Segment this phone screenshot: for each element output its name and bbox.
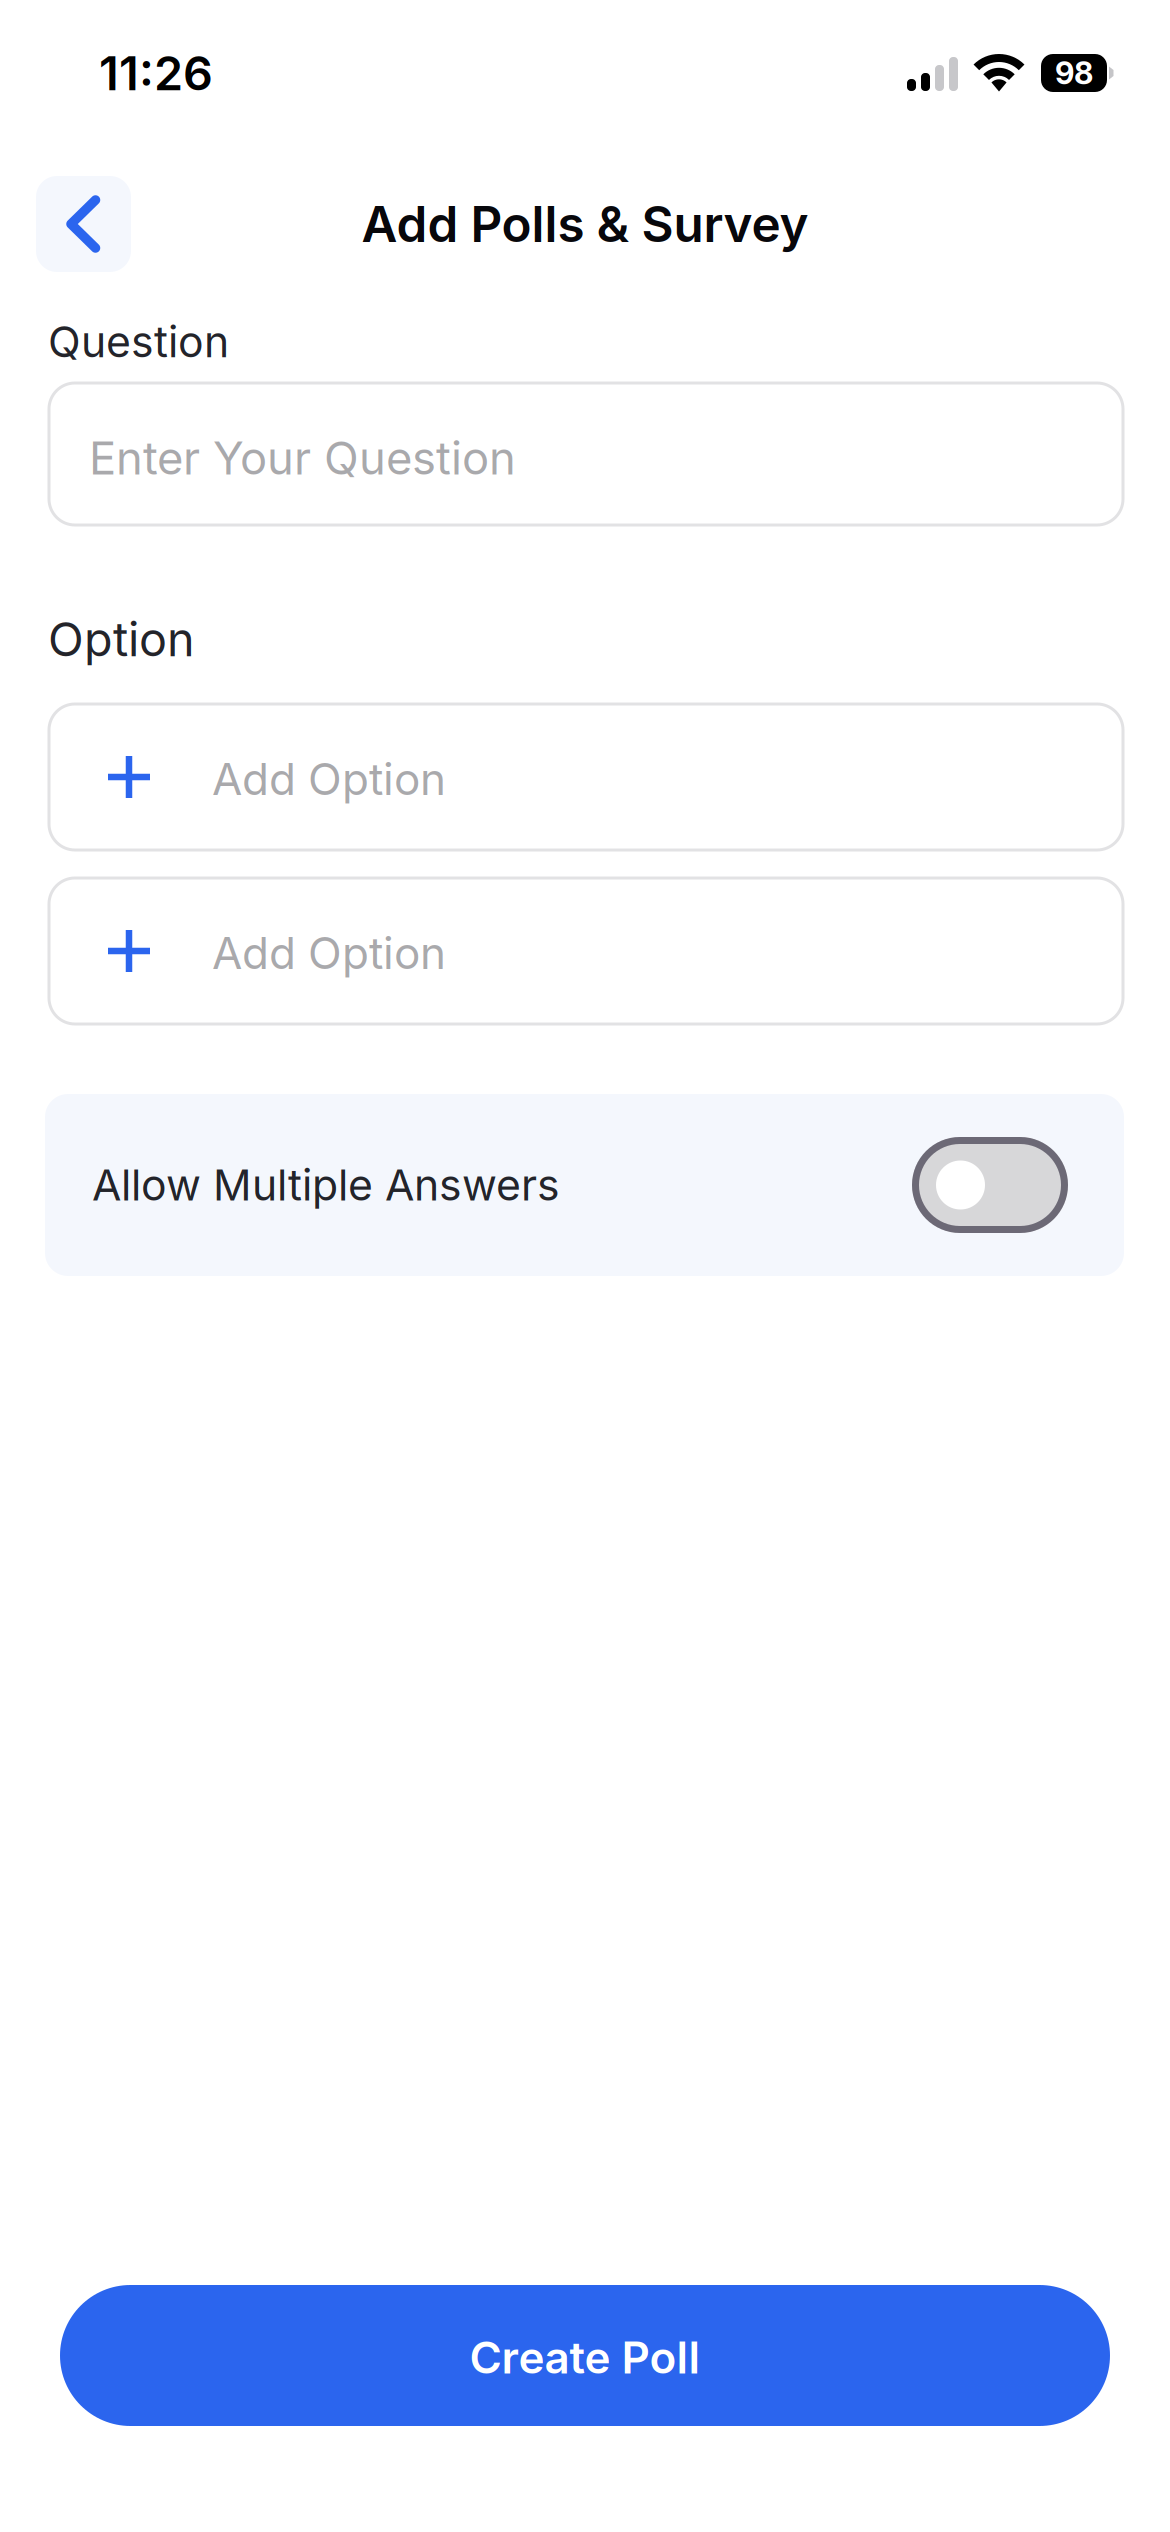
staticText: Enter Your Question <box>89 431 516 485</box>
staticText: Add Option <box>212 926 446 980</box>
button[interactable]: Create Poll <box>60 2285 1110 2426</box>
staticText: Option <box>48 611 195 667</box>
staticText: Allow Multiple Answers <box>92 1159 560 1211</box>
button[interactable]: Back <box>36 176 131 272</box>
staticText: Add Polls & Survey <box>361 194 808 254</box>
staticText: 11:26 <box>99 45 213 101</box>
staticText: Create Poll <box>469 2331 700 2384</box>
button[interactable]: Allow Multiple Answers <box>45 1094 1124 1276</box>
staticText: Question <box>48 316 229 368</box>
button[interactable]: Add Option <box>49 878 1123 1024</box>
staticText: Add Option <box>212 752 446 806</box>
staticText: 98 <box>1055 54 1093 91</box>
button[interactable]: Add Option <box>49 704 1123 850</box>
